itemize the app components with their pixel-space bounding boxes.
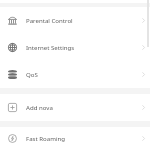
staticText: Fast Roaming: [26, 134, 136, 142]
button[interactable]: Add nova: [0, 94, 150, 121]
staticText: Parental Control: [26, 16, 136, 24]
button[interactable]: Internet Settings: [0, 34, 150, 61]
staticText: Internet Settings: [26, 43, 136, 51]
button[interactable]: Fast Roaming: [0, 127, 150, 150]
button[interactable]: QoS: [0, 61, 150, 88]
staticText: QoS: [26, 70, 136, 78]
button[interactable]: Parental Control: [0, 7, 150, 34]
staticText: Add nova: [26, 103, 136, 111]
